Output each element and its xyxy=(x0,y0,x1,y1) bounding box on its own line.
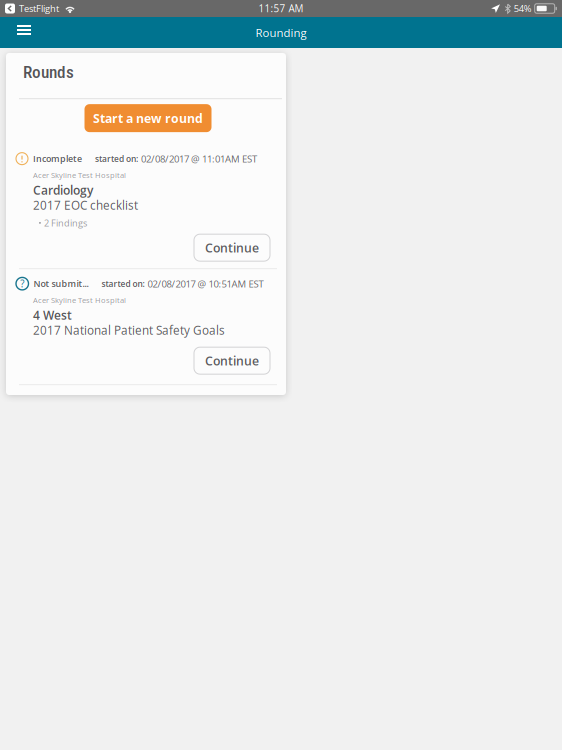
staticText: Cardiology xyxy=(33,182,93,198)
staticText: started on: xyxy=(95,153,138,164)
button[interactable]: Menu xyxy=(3,17,45,48)
staticText: Rounding xyxy=(255,25,306,40)
staticText: Not submit... xyxy=(33,278,88,290)
staticText: 2017 EOC checklist xyxy=(33,197,138,213)
staticText: Continue xyxy=(205,352,259,369)
staticText: Acer Skyline Test Hospital xyxy=(33,295,126,305)
staticText: Continue xyxy=(205,239,259,256)
button[interactable]: Start a new round xyxy=(84,104,211,132)
staticText: TestFlight xyxy=(19,2,59,15)
staticText: Rounds xyxy=(23,62,74,82)
staticText: 2017 National Patient Safety Goals xyxy=(33,322,225,338)
button[interactable]: Continue xyxy=(194,234,270,261)
staticText: ? xyxy=(20,277,24,290)
staticText: 11:57 AM xyxy=(258,2,303,15)
button[interactable]: Back to TestFlight xyxy=(5,2,59,15)
staticText: 4 West xyxy=(33,307,72,323)
staticText: Start a new round xyxy=(93,110,203,126)
staticText: 54% xyxy=(514,2,532,15)
staticText: Incomplete xyxy=(33,153,82,165)
button[interactable]: Continue xyxy=(194,347,270,374)
staticText: 2 Findings xyxy=(44,217,87,229)
staticText: 02/08/2017 @ 11:01AM EST xyxy=(141,152,257,165)
staticText: 02/08/2017 @ 10:51AM EST xyxy=(147,277,263,290)
staticText: started on: xyxy=(101,278,144,289)
staticText: Acer Skyline Test Hospital xyxy=(33,170,126,180)
